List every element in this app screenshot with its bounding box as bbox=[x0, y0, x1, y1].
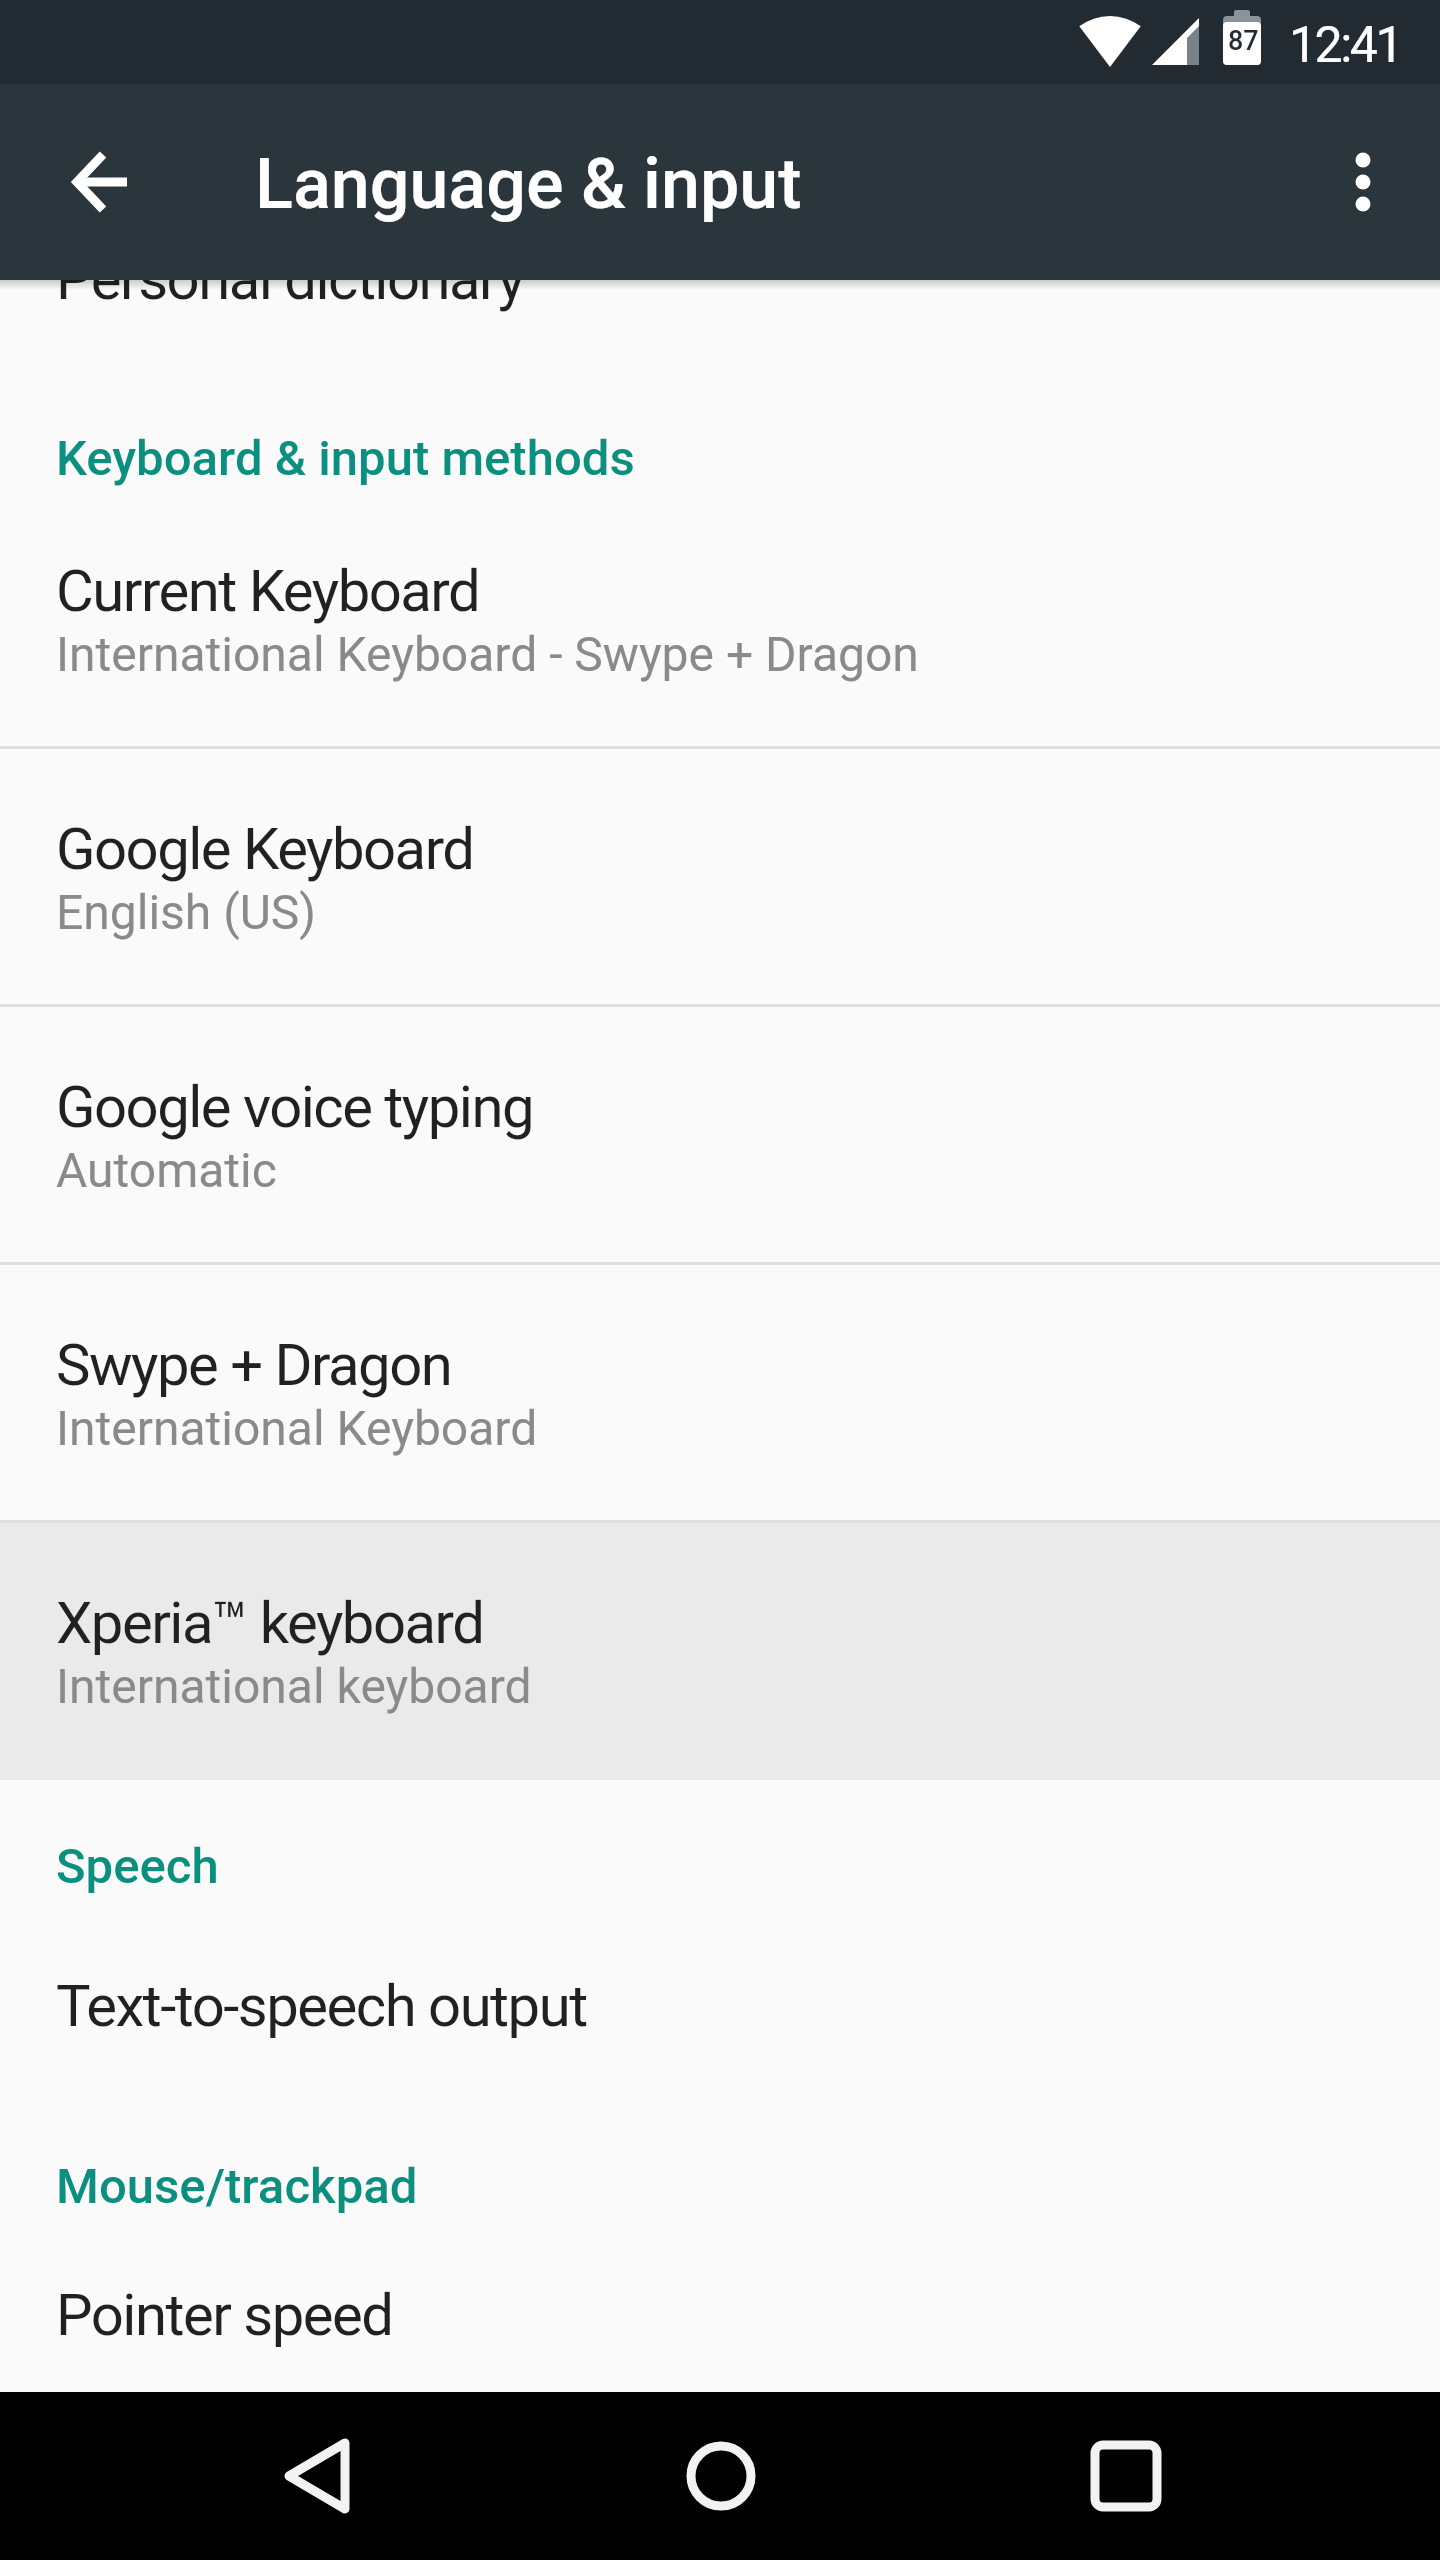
button[interactable]: Personal dictionary bbox=[0, 280, 1440, 323]
staticText: Language & input bbox=[255, 143, 802, 225]
staticText: Google Keyboard bbox=[56, 815, 474, 883]
staticText: Google voice typing bbox=[56, 1073, 534, 1141]
staticText: Personal dictionary bbox=[56, 280, 524, 313]
staticText: English (US) bbox=[56, 884, 316, 940]
button[interactable]: Xperia™ keyboard bbox=[0, 1522, 1440, 1780]
button[interactable]: Current Keyboard bbox=[0, 490, 1440, 748]
staticText: Current Keyboard bbox=[56, 557, 480, 625]
button[interactable] bbox=[1042, 2392, 1210, 2560]
staticText: International Keyboard bbox=[56, 1400, 538, 1456]
staticText: 12:41 bbox=[1289, 16, 1402, 75]
button[interactable]: Google voice typing bbox=[0, 1006, 1440, 1264]
staticText: Automatic bbox=[56, 1142, 277, 1198]
button[interactable]: Text-to-speech output bbox=[0, 1921, 1440, 2089]
staticText: Xperia™ keyboard bbox=[56, 1589, 484, 1657]
button[interactable] bbox=[233, 2392, 401, 2560]
button[interactable]: Pointer speed bbox=[0, 2230, 1440, 2392]
staticText: Mouse/trackpad bbox=[56, 2158, 418, 2215]
button[interactable] bbox=[43, 126, 155, 238]
staticText: 87 bbox=[1228, 25, 1259, 57]
button[interactable]: Google Keyboard bbox=[0, 748, 1440, 1006]
button[interactable] bbox=[637, 2392, 805, 2560]
staticText: International Keyboard - Swype + Dragon bbox=[56, 626, 919, 682]
button[interactable] bbox=[1307, 126, 1419, 238]
staticText: Speech bbox=[56, 1838, 219, 1895]
staticText: Text-to-speech output bbox=[56, 1972, 587, 2040]
staticText: Swype + Dragon bbox=[56, 1331, 452, 1399]
staticText: International keyboard bbox=[56, 1658, 532, 1714]
staticText: Keyboard & input methods bbox=[56, 430, 635, 487]
button[interactable]: Swype + Dragon bbox=[0, 1264, 1440, 1522]
staticText: Pointer speed bbox=[56, 2281, 393, 2349]
